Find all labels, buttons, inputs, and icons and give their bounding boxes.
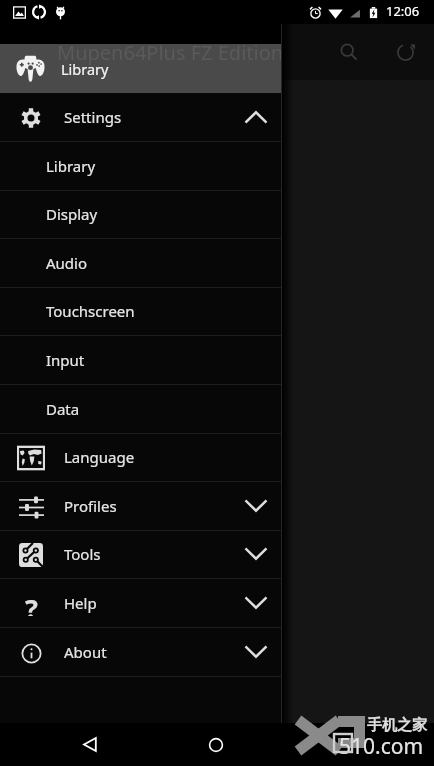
- staticText: 12:06: [386, 2, 420, 20]
- staticText: Language: [64, 447, 135, 467]
- staticText: Display: [46, 204, 98, 224]
- button[interactable]: Language: [0, 434, 281, 482]
- button[interactable]: Library: [0, 142, 281, 191]
- button[interactable]: Back: [66, 723, 114, 766]
- button[interactable]: Touchscreen: [0, 288, 281, 336]
- button[interactable]: Data: [0, 385, 281, 434]
- staticText: Settings: [64, 107, 122, 127]
- button[interactable]: Mupen64Plus FZ Edition: [0, 44, 281, 93]
- staticText: Audio: [46, 253, 88, 273]
- button[interactable]: Audio: [0, 239, 281, 288]
- button[interactable]: Refresh: [381, 28, 429, 76]
- staticText: Profiles: [64, 496, 117, 516]
- staticText: Mupen64Plus FZ Edition: [57, 39, 284, 66]
- button[interactable]: Input: [0, 336, 281, 385]
- staticText: Library: [61, 59, 109, 79]
- staticText: Input: [46, 350, 85, 370]
- staticText: About: [64, 642, 107, 662]
- staticText: 510.com: [339, 732, 424, 761]
- staticText: Data: [46, 399, 80, 419]
- staticText: Library: [46, 156, 96, 176]
- staticText: Mupen64Plus FZ Edition: [57, 35, 284, 62]
- staticText: 手机之家: [367, 716, 427, 735]
- button[interactable]: Display: [0, 191, 281, 239]
- button[interactable]: ?: [0, 579, 281, 628]
- staticText: Touchscreen: [46, 301, 135, 321]
- button[interactable]: Profiles: [0, 482, 281, 531]
- staticText: Tools: [64, 544, 101, 564]
- button[interactable]: Tools: [0, 531, 281, 579]
- button[interactable]: Settings: [0, 93, 281, 142]
- button[interactable]: Search: [325, 28, 373, 76]
- staticText: ?: [25, 590, 38, 616]
- button[interactable]: Home: [192, 723, 240, 766]
- staticText: Help: [64, 593, 97, 613]
- button[interactable]: About: [0, 628, 281, 677]
